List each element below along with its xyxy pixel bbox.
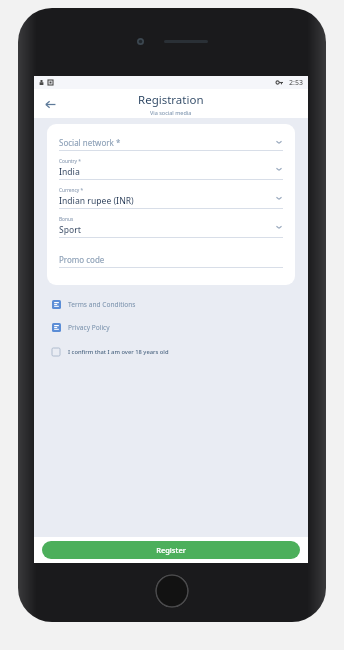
staticText: Indian rupee (INR): [59, 195, 134, 207]
staticText: Via social media: [150, 109, 192, 116]
staticText: Social network *: [59, 137, 121, 148]
staticText: Registration: [138, 92, 204, 108]
staticText: Country *: [59, 158, 81, 165]
staticText: Privacy Policy: [68, 323, 110, 332]
button[interactable]: Back: [40, 94, 60, 114]
button[interactable]: I confirm that I am over 18 years old: [52, 345, 290, 359]
button[interactable]: Promo code: [59, 251, 283, 275]
button[interactable]: Currency *: [59, 187, 283, 216]
button[interactable]: Terms and Conditions: [52, 297, 290, 311]
staticText: Terms and Conditions: [68, 300, 136, 309]
button[interactable]: Register: [42, 541, 300, 559]
button[interactable]: Social network *: [59, 134, 283, 158]
staticText: Sport: [59, 224, 81, 236]
staticText: Register: [156, 545, 186, 555]
button[interactable]: Country *: [59, 158, 283, 187]
staticText: Bonus: [59, 216, 74, 223]
staticText: 2:53: [289, 78, 303, 88]
button[interactable]: Bonus: [59, 216, 283, 245]
staticText: India: [59, 166, 80, 178]
staticText: I confirm that I am over 18 years old: [68, 348, 169, 356]
staticText: Promo code: [59, 254, 105, 265]
staticText: Currency *: [59, 187, 84, 194]
button[interactable]: Privacy Policy: [52, 320, 290, 334]
